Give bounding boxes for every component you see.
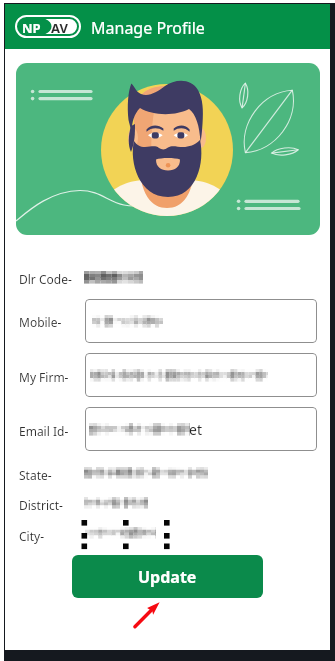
button[interactable]: Update [72, 555, 263, 598]
staticText: et [189, 420, 202, 439]
staticText: Manage Profile [91, 17, 205, 39]
staticText: Email Id- [19, 423, 69, 439]
staticText: AV [51, 19, 68, 37]
staticText: My Firm- [19, 369, 69, 385]
staticText: City- [19, 528, 44, 544]
staticText: District- [19, 497, 63, 513]
button[interactable] [85, 299, 317, 343]
button[interactable] [85, 407, 317, 451]
button[interactable] [85, 353, 317, 397]
staticText: Update [138, 566, 197, 588]
staticText: State- [19, 467, 52, 483]
staticText: Dlr Code- [19, 271, 72, 287]
staticText: Mobile- [19, 314, 62, 330]
staticText: NP [22, 19, 41, 37]
